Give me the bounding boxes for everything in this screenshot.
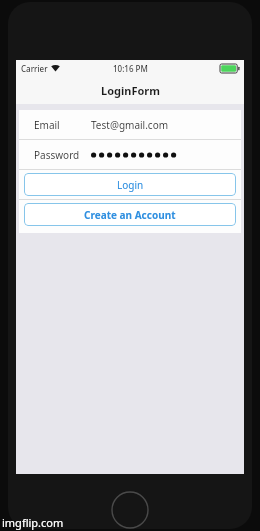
staticText: Carrier bbox=[21, 63, 48, 74]
staticText: LoginForm bbox=[101, 83, 160, 98]
staticText: Test@gmail.com bbox=[91, 118, 169, 132]
staticText: Email bbox=[34, 118, 60, 132]
staticText: imgflip.com bbox=[2, 515, 64, 530]
button[interactable]: Password bbox=[19, 140, 241, 169]
staticText: Login bbox=[117, 178, 144, 192]
button[interactable]: Login bbox=[24, 173, 236, 196]
staticText: Create an Account bbox=[84, 208, 176, 222]
staticText: Password bbox=[34, 148, 80, 162]
button[interactable]: Home bbox=[111, 491, 149, 529]
button[interactable]: Email bbox=[19, 110, 241, 139]
staticText: 10:16 PM bbox=[113, 63, 148, 74]
button[interactable]: Create an Account bbox=[24, 203, 236, 226]
